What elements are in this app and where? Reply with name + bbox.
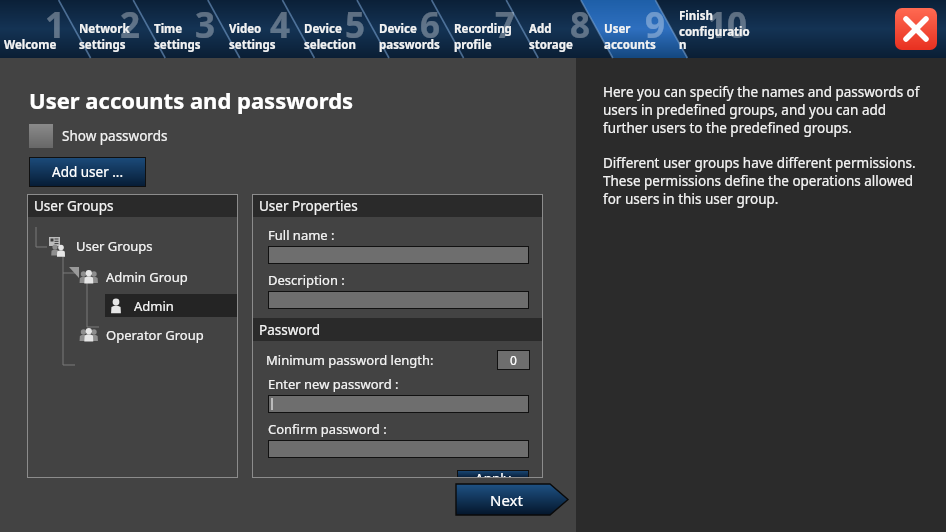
staticText: 3: [195, 1, 216, 49]
staticText: Finish: [679, 8, 713, 24]
button[interactable]: 1: [0, 0, 75, 58]
staticText: 4: [270, 1, 291, 49]
button[interactable]: 0: [497, 350, 530, 370]
staticText: profile: [454, 37, 492, 53]
staticText: storage: [529, 37, 573, 53]
staticText: configuration: [679, 24, 750, 53]
staticText: Welcome: [4, 37, 57, 53]
staticText: 10: [707, 1, 748, 49]
staticText: Device: [379, 21, 417, 37]
button[interactable]: Add user ...: [29, 157, 146, 187]
button[interactable]: 9: [600, 0, 675, 58]
staticText: 9: [645, 1, 666, 49]
button[interactable]: 6: [375, 0, 450, 58]
staticText: Add user ...: [52, 163, 124, 181]
staticText: User Groups: [76, 237, 153, 255]
button[interactable]: [268, 395, 529, 413]
staticText: Operator Group: [106, 326, 204, 344]
staticText: User Groups: [34, 197, 114, 215]
button[interactable]: 10: [675, 0, 750, 58]
button[interactable]: Apply: [457, 470, 529, 478]
button[interactable]: 5: [300, 0, 375, 58]
button[interactable]: 2: [75, 0, 150, 58]
button[interactable]: [268, 246, 529, 264]
staticText: Add: [529, 21, 552, 37]
staticText: passwords: [379, 37, 440, 53]
staticText: 8: [570, 1, 591, 49]
staticText: 1: [45, 1, 66, 49]
staticText: Apply: [475, 470, 511, 478]
staticText: Next: [490, 490, 523, 510]
button[interactable]: User Groups: [47, 234, 237, 257]
staticText: Show passwords: [62, 127, 168, 145]
button[interactable]: 8: [525, 0, 600, 58]
staticText: accounts: [604, 37, 656, 53]
button[interactable]: [268, 440, 529, 458]
staticText: User Properties: [259, 197, 358, 215]
staticText: 2: [120, 1, 141, 49]
staticText: Here you can specify the names and passw…: [603, 83, 928, 137]
staticText: 5: [345, 1, 366, 49]
staticText: Confirm password :: [268, 420, 387, 438]
staticText: Minimum password length:: [266, 351, 434, 369]
button[interactable]: Next: [456, 484, 568, 515]
staticText: Network: [79, 21, 130, 37]
staticText: Time: [154, 21, 183, 37]
staticText: settings: [154, 37, 201, 53]
button[interactable]: Operator Group: [77, 323, 237, 346]
staticText: 6: [420, 1, 441, 49]
staticText: Video: [229, 21, 262, 37]
staticText: Password: [259, 321, 321, 339]
staticText: Device: [304, 21, 342, 37]
button[interactable]: 7: [450, 0, 525, 58]
staticText: Enter new password :: [268, 375, 399, 393]
staticText: settings: [229, 37, 276, 53]
staticText: User: [604, 21, 631, 37]
button[interactable]: 3: [150, 0, 225, 58]
button[interactable]: Close: [895, 8, 937, 50]
button[interactable]: Admin: [105, 294, 237, 317]
button[interactable]: 4: [225, 0, 300, 58]
button[interactable]: [268, 291, 529, 309]
staticText: Recording: [454, 21, 512, 37]
staticText: Admin Group: [106, 268, 188, 286]
staticText: Full name :: [268, 226, 335, 244]
staticText: 0: [510, 352, 517, 368]
staticText: Description :: [268, 271, 345, 289]
staticText: User accounts and passwords: [29, 85, 354, 115]
button[interactable]: Admin Group: [77, 265, 237, 288]
staticText: 7: [495, 1, 516, 49]
staticText: settings: [79, 37, 126, 53]
staticText: selection: [304, 37, 356, 53]
staticText: Different user groups have different per…: [603, 154, 928, 208]
staticText: Admin: [134, 297, 174, 315]
button[interactable]: Show passwords: [29, 124, 168, 148]
